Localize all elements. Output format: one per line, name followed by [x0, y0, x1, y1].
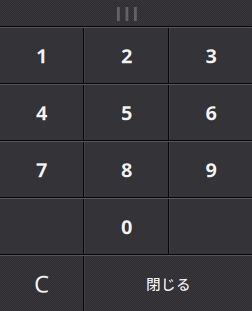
button[interactable]: 6 — [170, 85, 252, 140]
staticText: 7 — [36, 156, 47, 183]
staticText: 5 — [121, 99, 132, 126]
button[interactable]: 0 — [85, 199, 168, 254]
button[interactable]: C — [0, 256, 83, 311]
staticText: C — [34, 268, 49, 299]
staticText: 0 — [121, 213, 132, 240]
staticText: 3 — [205, 42, 216, 69]
staticText: 1 — [36, 42, 47, 69]
button[interactable]: 2 — [85, 28, 168, 83]
staticText: 2 — [121, 42, 132, 69]
button[interactable]: 7 — [0, 142, 83, 197]
button[interactable]: 閉じる — [85, 256, 252, 311]
staticText: 4 — [36, 99, 47, 126]
button[interactable]: 8 — [85, 142, 168, 197]
button[interactable]: 1 — [0, 28, 83, 83]
staticText: 閉じる — [146, 273, 191, 294]
staticText: 9 — [205, 156, 216, 183]
button[interactable]: 3 — [170, 28, 252, 83]
staticText: 6 — [205, 99, 216, 126]
button[interactable]: 4 — [0, 85, 83, 140]
staticText: 8 — [121, 156, 132, 183]
button[interactable]: 9 — [170, 142, 252, 197]
button[interactable]: 5 — [85, 85, 168, 140]
